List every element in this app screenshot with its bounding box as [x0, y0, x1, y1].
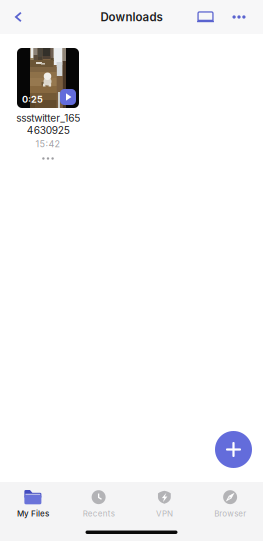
button[interactable]: VPN [131, 488, 197, 520]
button[interactable]: Browser [197, 488, 263, 520]
button[interactable]: Recents [66, 488, 132, 520]
button[interactable]: Connect to computer [188, 0, 223, 34]
staticText: Downloads [100, 10, 162, 24]
button[interactable]: More options [223, 0, 255, 34]
staticText: Recents [83, 509, 115, 518]
staticText: 15:42 [35, 138, 60, 149]
staticText: ssstwitter_1654630925 [16, 112, 80, 136]
staticText: 0:25 [22, 94, 43, 105]
button[interactable]: File options [33, 153, 63, 163]
button[interactable]: My Files [0, 488, 66, 520]
staticText: Browser [214, 509, 246, 518]
button[interactable]: Back [0, 0, 37, 34]
staticText: My Files [17, 509, 49, 518]
button[interactable]: Add file [215, 431, 252, 468]
staticText: VPN [156, 509, 173, 518]
